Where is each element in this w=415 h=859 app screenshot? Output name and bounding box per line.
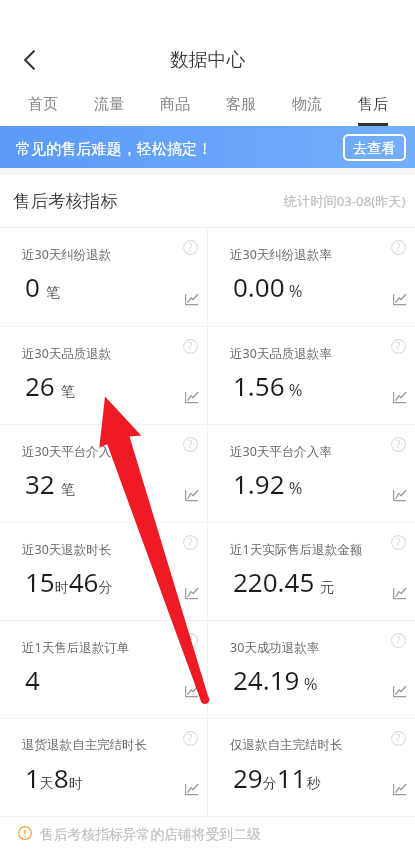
button[interactable]: Help xyxy=(181,729,199,747)
button[interactable]: 近30天退款时长 xyxy=(0,523,207,620)
staticText: ? xyxy=(188,437,193,451)
button[interactable]: 近30天平台介入率 xyxy=(208,425,415,522)
staticText: 客服 xyxy=(226,95,256,114)
button[interactable]: Trend chart xyxy=(387,681,411,701)
button[interactable]: 商品 xyxy=(142,88,208,126)
staticText: 近30天纠纷退款率 xyxy=(230,246,332,263)
button[interactable]: Trend chart xyxy=(387,387,411,407)
staticText: 1天8时 xyxy=(25,760,83,795)
staticText: 29分11秒 xyxy=(233,760,321,795)
staticText: 去查看 xyxy=(353,139,396,157)
staticText: ? xyxy=(188,633,193,647)
staticText: 0.00 % xyxy=(233,269,303,304)
staticText: ? xyxy=(396,437,401,451)
staticText: 售后 xyxy=(358,95,388,114)
staticText: 220.45 元 xyxy=(233,564,335,599)
staticText: 近30天退款时长 xyxy=(22,541,112,558)
button[interactable]: Help xyxy=(181,631,199,649)
button[interactable]: Trend chart xyxy=(179,485,203,505)
button[interactable]: Trend chart xyxy=(179,681,203,701)
staticText: 物流 xyxy=(292,95,322,114)
staticText: ? xyxy=(188,535,193,549)
button[interactable]: 近1天实际售后退款金额 xyxy=(208,523,415,620)
staticText: 统计时间03-08(昨天) xyxy=(284,192,406,210)
button[interactable]: Trend chart xyxy=(179,289,203,309)
staticText: 1.56 % xyxy=(233,368,303,403)
staticText: 32 笔 xyxy=(25,466,75,501)
staticText: 30天成功退款率 xyxy=(230,639,320,656)
button[interactable]: 近30天品质退款率 xyxy=(208,327,415,424)
button[interactable]: 流量 xyxy=(76,88,142,126)
staticText: 近1天售后退款订单 xyxy=(22,639,130,656)
staticText: ? xyxy=(396,731,401,745)
staticText: 24.19 % xyxy=(233,662,318,697)
button[interactable]: 首页 xyxy=(10,88,76,126)
staticText: ? xyxy=(188,240,193,254)
staticText: ? xyxy=(396,535,401,549)
button[interactable]: 物流 xyxy=(274,88,340,126)
staticText: 退货退款自主完结时长 xyxy=(22,737,147,753)
button[interactable]: 售后 xyxy=(340,88,406,126)
button[interactable]: 近30天品质退款 xyxy=(0,327,207,424)
button[interactable]: 去查看 xyxy=(343,134,406,161)
button[interactable]: 近30天纠纷退款率 xyxy=(208,228,415,326)
button[interactable]: 近1天售后退款订单 xyxy=(0,621,207,718)
staticText: 近30天品质退款率 xyxy=(230,345,332,362)
button[interactable]: 退货退款自主完结时长 xyxy=(0,719,207,816)
button[interactable]: Help xyxy=(181,337,199,355)
button[interactable]: 30天成功退款率 xyxy=(208,621,415,718)
staticText: 售后考核指标异常的店铺将受到二级限制 xyxy=(40,826,261,843)
button[interactable]: Help xyxy=(389,238,407,256)
button[interactable]: 仅退款自主完结时长 xyxy=(208,719,415,816)
staticText: 近30天平台介入率 xyxy=(230,443,332,460)
staticText: 近1天实际售后退款金额 xyxy=(230,541,363,558)
staticText: 流量 xyxy=(94,95,124,114)
staticText: 1.92 % xyxy=(233,466,303,501)
staticText: 近30天平台介入 xyxy=(22,443,112,460)
button[interactable]: 近30天纠纷退款 xyxy=(0,228,207,326)
staticText: ? xyxy=(188,731,193,745)
button[interactable]: Help xyxy=(389,631,407,649)
staticText: ? xyxy=(396,240,401,254)
button[interactable]: Trend chart xyxy=(387,779,411,799)
staticText: 15时46分 xyxy=(25,564,113,599)
button[interactable]: Trend chart xyxy=(179,583,203,603)
staticText: 常见的售后难题，轻松搞定！ xyxy=(16,139,213,158)
button[interactable]: Trend chart xyxy=(387,485,411,505)
staticText: 仅退款自主完结时长 xyxy=(230,737,343,753)
staticText: 近30天品质退款 xyxy=(22,345,112,362)
staticText: 首页 xyxy=(28,95,58,114)
button[interactable]: Help xyxy=(389,729,407,747)
staticText: ? xyxy=(396,633,401,647)
button[interactable]: Trend chart xyxy=(387,583,411,603)
button[interactable]: Help xyxy=(389,533,407,551)
button[interactable]: 客服 xyxy=(208,88,274,126)
staticText: 商品 xyxy=(160,95,190,114)
staticText: ? xyxy=(188,339,193,353)
staticText: 数据中心 xyxy=(170,48,246,72)
button[interactable]: Trend chart xyxy=(179,779,203,799)
staticText: 售后考核指标 xyxy=(13,190,118,212)
staticText: 近30天纠纷退款 xyxy=(22,246,112,263)
button[interactable]: Help xyxy=(181,238,199,256)
staticText: 0 笔 xyxy=(25,269,60,304)
button[interactable]: Help xyxy=(181,435,199,453)
button[interactable]: Help xyxy=(181,533,199,551)
button[interactable]: Trend chart xyxy=(387,289,411,309)
button[interactable]: 近30天平台介入 xyxy=(0,425,207,522)
button[interactable]: Help xyxy=(389,435,407,453)
staticText: ? xyxy=(396,339,401,353)
button[interactable]: Trend chart xyxy=(179,387,203,407)
button[interactable]: Help xyxy=(389,337,407,355)
button[interactable]: Back xyxy=(7,38,51,82)
staticText: 26 笔 xyxy=(25,368,75,403)
staticText: 4 xyxy=(25,662,40,697)
